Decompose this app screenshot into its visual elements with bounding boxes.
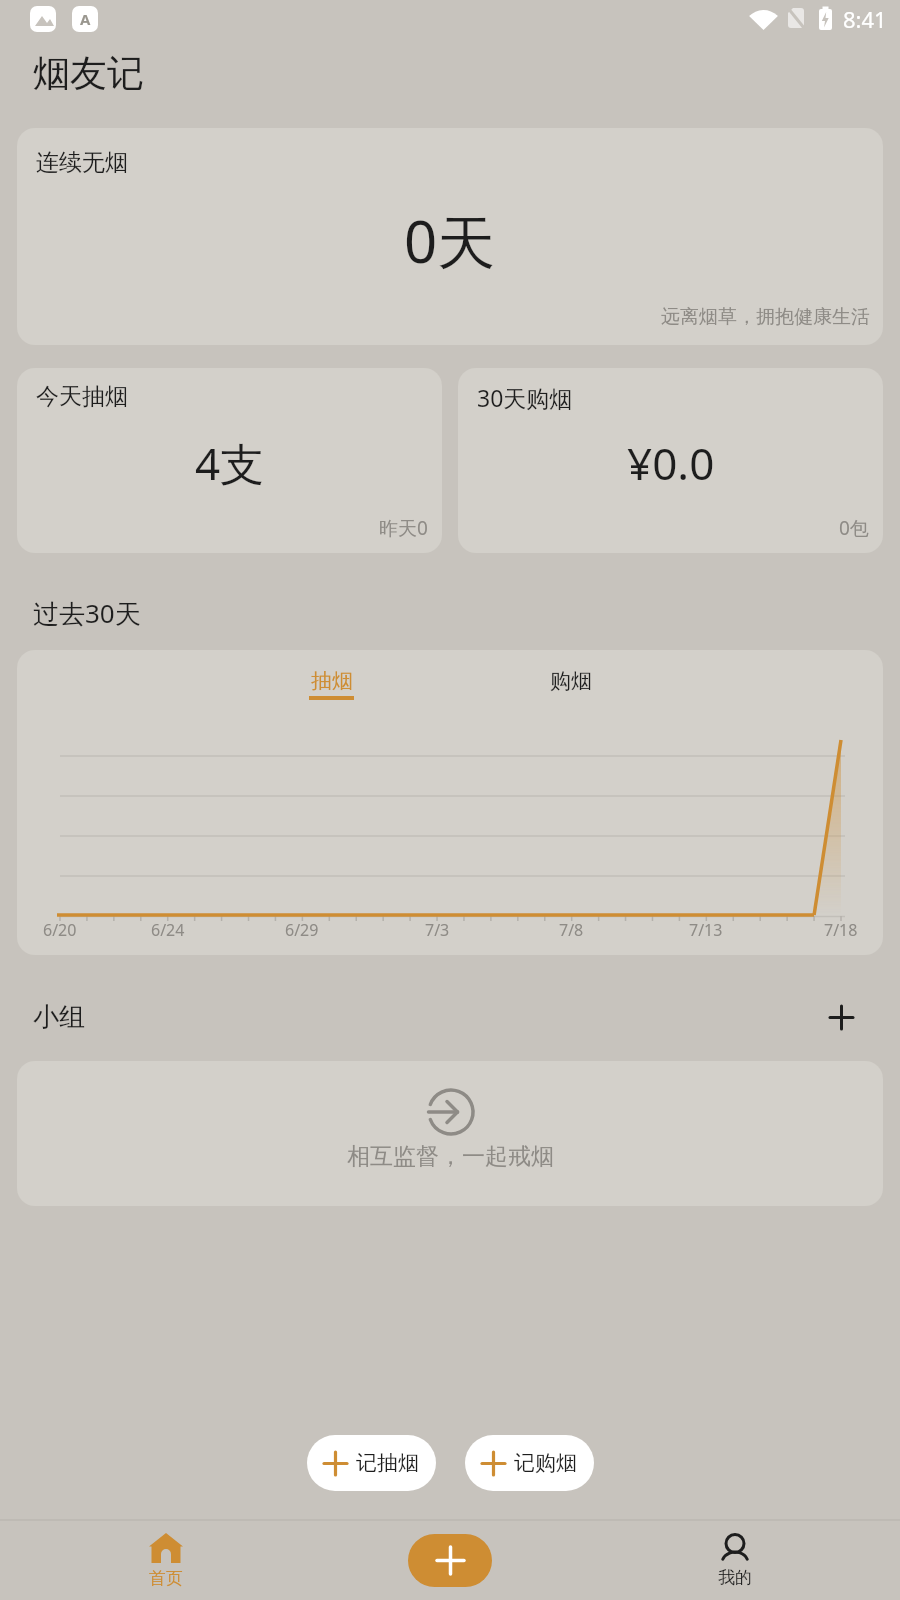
staticText: 30天购烟 [477,382,573,413]
staticText: 今天抽烟 [36,382,128,411]
button[interactable] [408,1534,492,1587]
staticText: 6/24 [151,919,185,941]
staticText: 6/29 [285,919,319,941]
button[interactable]: 我的 [600,1521,900,1600]
button[interactable]: 连续无烟 [17,128,883,345]
staticText: 连续无烟 [36,148,128,177]
button[interactable]: 记抽烟 [307,1435,436,1491]
staticText: 6/20 [43,919,77,941]
staticText: 0包 [839,515,869,541]
button[interactable] [830,1006,853,1029]
staticText: 烟友记 [33,50,144,97]
staticText: 7/18 [824,919,858,941]
button[interactable]: 30天购烟 [458,368,883,553]
staticText: 相互监督，一起戒烟 [347,1142,554,1171]
staticText: 7/13 [689,919,723,941]
staticText: 7/8 [559,919,584,941]
staticText: A [80,9,91,29]
staticText: 远离烟草，拥抱健康生活 [661,305,870,329]
staticText: 购烟 [550,668,592,694]
staticText: 8:41 [843,4,887,34]
staticText: 抽烟 [311,668,353,694]
button[interactable]: 记购烟 [465,1435,594,1491]
button[interactable]: 相互监督，一起戒烟 [17,1061,883,1206]
staticText: 7/3 [425,919,450,941]
button[interactable]: 购烟 [550,668,592,694]
staticText: 小组 [33,1001,85,1034]
staticText: 记购烟 [514,1450,577,1476]
button[interactable]: 首页 [0,1521,300,1600]
staticText: 0天 [404,201,496,280]
staticText: 昨天0 [379,515,428,541]
button[interactable]: 今天抽烟 [17,368,442,553]
staticText: 4支 [195,433,265,493]
staticText: ¥0.0 [627,433,715,493]
staticText: 记抽烟 [356,1450,419,1476]
staticText: 我的 [718,1567,752,1588]
staticText: 首页 [149,1568,183,1589]
button[interactable]: 抽烟 [309,668,354,700]
staticText: 过去30天 [33,595,141,631]
